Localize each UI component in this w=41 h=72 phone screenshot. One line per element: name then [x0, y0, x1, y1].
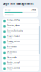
button[interactable]: Project_final.psd — [2, 34, 39, 39]
staticText: 410 MB — [7, 53, 12, 55]
staticText: Archive_2024.zip — [7, 19, 20, 21]
staticText: Large File Management — [2, 2, 33, 5]
staticText: of 64 GB used — [5, 14, 14, 15]
button[interactable]: Assets_pack.zip — [2, 66, 39, 71]
button[interactable]: Interview.wav — [2, 45, 39, 50]
button[interactable]: Q4_Deck.key — [2, 50, 39, 55]
button[interactable]: Archive_2024.zip — [2, 19, 39, 24]
staticText: 214 MB — [7, 69, 12, 70]
staticText: 520 MB — [7, 48, 12, 49]
staticText: Storage — [5, 9, 11, 11]
button[interactable]: Vacation_clip.mov — [2, 24, 39, 29]
staticText: 742 MB — [7, 42, 12, 44]
staticText: Assets_pack.zip — [7, 67, 20, 69]
staticText: Q4_Deck.key — [7, 51, 17, 53]
staticText: 288 MB — [7, 64, 12, 65]
button[interactable]: Training_set.csv — [2, 40, 39, 45]
staticText: Project_final.psd — [7, 35, 20, 37]
staticText: Interview.wav — [7, 46, 17, 48]
staticText: 305 MB — [7, 58, 12, 60]
staticText: Library.sqlite — [7, 56, 17, 58]
staticText: 2.3 GB — [7, 21, 11, 23]
staticText: System_Backup.dmg — [7, 30, 23, 32]
staticText: 980 MB — [7, 37, 12, 39]
staticText: Vacation_clip.mov — [7, 25, 20, 26]
staticText: 1.8 GB — [7, 27, 11, 28]
staticText: Render_out.mp4 — [7, 62, 20, 64]
button[interactable]: Library.sqlite — [2, 56, 39, 61]
button[interactable]: Render_out.mp4 — [2, 61, 39, 66]
staticText: Training_set.csv — [7, 40, 20, 42]
button[interactable]: System_Backup.dmg — [2, 29, 39, 34]
staticText: 24.6 GB — [31, 9, 36, 11]
staticText: 1.4 GB — [7, 32, 11, 33]
